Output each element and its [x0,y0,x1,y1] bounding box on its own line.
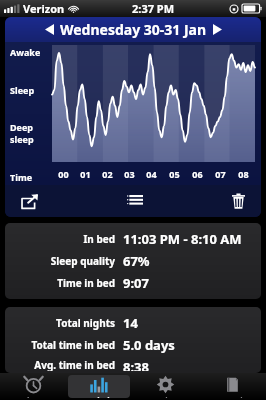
staticText: Verizon [23,1,65,16]
button[interactable]: List [123,191,147,211]
button[interactable]: Sleep quality [5,250,261,272]
button[interactable]: Share [17,190,42,213]
staticText: Total nights [56,316,115,330]
button[interactable]: Time in bed [5,272,261,294]
button[interactable]: Statistics [68,375,130,398]
staticText: Sleep quality [50,254,115,268]
button[interactable]: Alarm [2,375,64,398]
staticText: sleep [10,133,34,145]
staticText: 01 [80,168,91,180]
staticText: 05 [169,168,180,180]
staticText: 02 [102,168,113,180]
staticText: 11:03 PM - 8:10 AM [123,230,242,248]
staticText: 9:07 [123,274,149,292]
staticText: Wednesday 30-31 Jan [60,20,207,39]
staticText: 00 [58,168,69,180]
staticText: 67% [123,252,150,270]
staticText: Instructions [208,395,257,398]
staticText: 8:38 [123,358,149,371]
button[interactable]: Next day [207,20,228,39]
staticText: 2:37 PM [132,1,175,16]
staticText: 04 [146,168,157,180]
button[interactable]: Total time in bed [5,334,261,356]
staticText: 14 [123,314,138,332]
button[interactable]: Instructions [201,375,264,398]
button[interactable]: Settings [134,375,197,398]
button[interactable]: In bed [5,228,261,250]
staticText: 03 [124,168,135,180]
staticText: Avg. time in bed [34,358,115,371]
staticText: Sleep [10,84,35,96]
staticText: 07 [215,168,226,180]
staticText: Deep [10,121,34,133]
staticText: Awake [10,46,41,58]
staticText: 08 [238,168,249,180]
button[interactable]: Previous day [39,20,60,39]
staticText: Statistics [81,395,118,398]
staticText: Time in bed [57,276,115,290]
staticText: Settings [149,395,182,398]
button[interactable]: Delete [228,189,249,213]
staticText: 5.0 days [123,336,175,354]
staticText: Time [10,171,33,183]
staticText: Total time in bed [31,338,115,352]
button[interactable]: Avg. time in bed [5,356,261,373]
button[interactable]: Total nights [5,312,261,334]
staticText: In bed [83,232,115,246]
staticText: Alarm [21,395,46,398]
staticText: 06 [192,168,203,180]
